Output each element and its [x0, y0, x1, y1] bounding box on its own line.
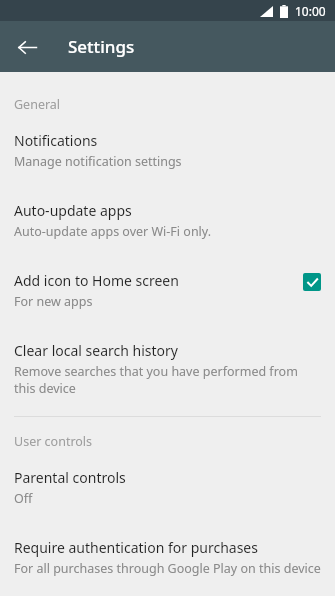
button[interactable]: Add icon to Home screen checkbox: [303, 273, 321, 291]
staticText: Off: [14, 490, 33, 507]
staticText: Settings: [68, 35, 135, 58]
button[interactable]: Auto-update apps: [0, 173, 335, 243]
staticText: Remove searches that you have performed …: [14, 363, 321, 396]
button[interactable]: Require authentication for purchases: [0, 510, 335, 580]
staticText: Add icon to Home screen: [14, 271, 179, 290]
button[interactable]: Clear local search history: [0, 313, 335, 399]
staticText: Auto-update apps: [14, 201, 132, 220]
staticText: Auto-update apps over Wi-Fi only.: [14, 223, 212, 240]
staticText: User controls: [14, 433, 93, 450]
button[interactable]: Notifications: [0, 113, 335, 173]
staticText: Clear local search history: [14, 341, 178, 360]
staticText: Notifications: [14, 131, 98, 150]
staticText: Manage notification settings: [14, 153, 182, 170]
staticText: For all purchases through Google Play on…: [14, 560, 321, 577]
button[interactable]: Add icon to Home screen: [0, 243, 335, 313]
staticText: For new apps: [14, 293, 93, 310]
button[interactable]: Parental controls: [0, 450, 335, 510]
staticText: 10:00: [295, 3, 326, 19]
staticText: Require authentication for purchases: [14, 538, 258, 557]
staticText: General: [14, 96, 61, 113]
staticText: Parental controls: [14, 468, 126, 487]
button[interactable]: Back: [8, 28, 46, 66]
